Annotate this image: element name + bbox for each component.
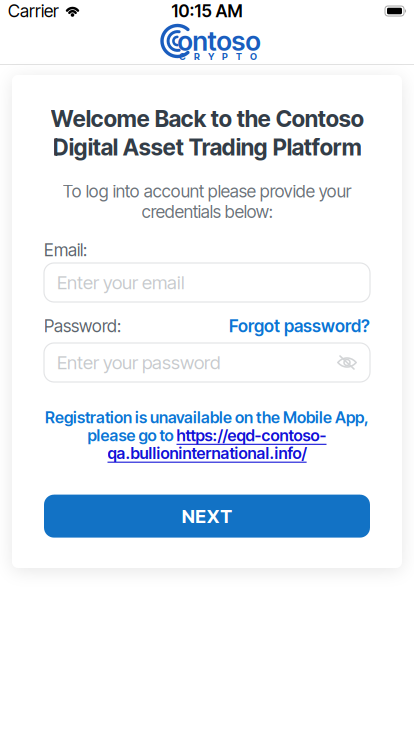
staticText: Carrier: [8, 1, 59, 21]
staticText: Welcome Back to the Contoso Digital Asse…: [50, 105, 363, 161]
button[interactable]: Password: [44, 343, 370, 382]
button[interactable]: Email: [44, 263, 370, 302]
staticText: Email:: [44, 240, 87, 260]
staticText: https://eqd-contoso-: [176, 426, 326, 445]
staticText: Forgot password?: [229, 316, 370, 336]
staticText: Password:: [44, 316, 121, 336]
staticText: To log into account please provide your …: [62, 181, 351, 222]
staticText: NEXT: [182, 505, 232, 527]
staticText: Registration is unavailable on the Mobil…: [45, 408, 369, 427]
button[interactable]: Show password: [337, 354, 357, 370]
button[interactable]: NEXT: [44, 495, 370, 538]
staticText: ontoso: [177, 25, 260, 57]
staticText: 10:15 AM: [171, 1, 242, 21]
staticText: Enter your password: [57, 351, 220, 373]
staticText: please go to: [87, 426, 176, 445]
staticText: Enter your email: [57, 271, 185, 293]
staticText: qa.bullioninternational.info/: [107, 444, 306, 463]
button[interactable]: Forgot password?: [229, 316, 370, 336]
staticText: C R Y P T O: [179, 51, 257, 62]
button[interactable]: Registration is unavailable on the Mobil…: [44, 408, 370, 463]
